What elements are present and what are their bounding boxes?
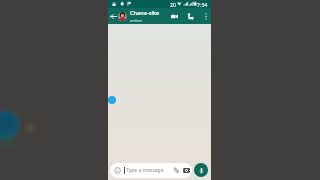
button[interactable]: Back [108,8,118,24]
button[interactable]: Type a message [110,163,192,178]
staticText: Type a message [126,167,164,174]
staticText: 7:54 [197,1,208,8]
button[interactable]: Video call [168,8,181,24]
staticText: online [130,18,142,23]
staticText: Chana-sike [130,9,160,17]
button[interactable]: More options [201,8,211,24]
button[interactable]: Call [184,8,197,24]
button[interactable]: Voice message [194,163,208,177]
staticText: 20 [170,1,176,8]
